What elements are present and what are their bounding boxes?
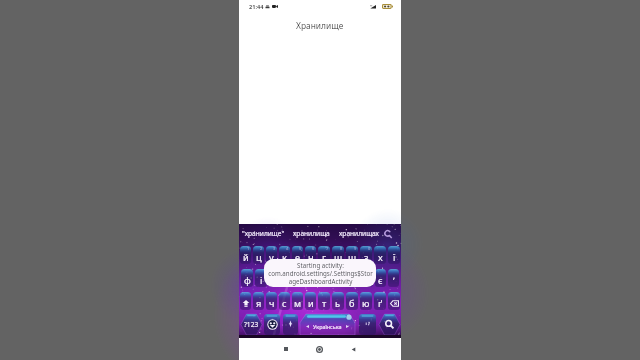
staticText: хранилища <box>293 229 330 238</box>
button[interactable]: Period <box>359 314 376 335</box>
button[interactable]: 8 <box>332 246 344 264</box>
button[interactable]: ч <box>266 292 277 310</box>
staticText: є <box>378 274 383 287</box>
staticText: ї <box>393 251 396 264</box>
button[interactable]: ж <box>362 269 373 287</box>
button[interactable]: я <box>253 292 264 310</box>
button[interactable]: Comma <box>283 314 298 335</box>
button[interactable]: Symbols <box>241 314 262 335</box>
staticText: 2 <box>260 246 263 251</box>
staticText: 7 <box>326 246 329 251</box>
button[interactable]: хранилищах <box>335 224 383 243</box>
staticText: Starting activity: com.android.settings/… <box>268 261 373 285</box>
button[interactable]: Shift <box>240 292 251 310</box>
staticText: 1 <box>247 246 250 251</box>
staticText: хранилищах <box>339 229 379 238</box>
staticText: к <box>282 251 287 264</box>
button[interactable]: 1 <box>240 246 251 264</box>
staticText: а <box>286 274 292 287</box>
button[interactable]: 2 <box>253 246 264 264</box>
button[interactable]: ґ <box>374 292 386 310</box>
staticText: е <box>295 251 301 264</box>
staticText: ф <box>244 274 251 287</box>
staticText: й <box>243 251 249 264</box>
button[interactable]: Voice search <box>382 228 394 240</box>
staticText: щ <box>348 251 357 264</box>
staticText: ш <box>334 251 343 264</box>
staticText: 6 <box>312 246 315 251</box>
staticText: Українська <box>313 323 342 330</box>
button[interactable]: ь <box>332 292 344 310</box>
button[interactable]: "хранилище" <box>240 224 287 243</box>
staticText: ?123 <box>244 320 259 329</box>
staticText: 8 <box>340 246 343 251</box>
button[interactable]: ʼ <box>388 269 399 287</box>
button[interactable]: 4 <box>279 246 290 264</box>
staticText: и <box>308 297 314 310</box>
staticText: ц <box>256 251 262 264</box>
button[interactable]: в <box>269 269 281 287</box>
staticText: і <box>260 274 263 287</box>
button[interactable]: і <box>255 269 267 287</box>
button[interactable]: х <box>374 246 386 264</box>
button[interactable]: ф <box>241 269 253 287</box>
staticText: с <box>282 297 287 310</box>
staticText: о <box>326 274 332 287</box>
button[interactable]: Recent apps <box>277 340 295 358</box>
staticText: Хранилище <box>296 20 344 31</box>
staticText: 4 <box>286 246 289 251</box>
button[interactable]: ю <box>360 292 372 310</box>
button[interactable]: 7 <box>318 246 330 264</box>
staticText: в <box>272 274 278 287</box>
staticText: т <box>322 297 327 310</box>
staticText: м <box>294 297 302 310</box>
staticText: х <box>378 251 383 264</box>
staticText: п <box>300 274 306 287</box>
staticText: 9 <box>354 246 357 251</box>
button[interactable]: п <box>297 269 308 287</box>
staticText: б <box>349 297 355 310</box>
button[interactable]: а <box>283 269 295 287</box>
button[interactable]: Home <box>310 340 328 358</box>
staticText: я <box>256 297 262 310</box>
staticText: р <box>313 274 319 287</box>
button[interactable]: є <box>375 269 386 287</box>
staticText: 21:44 <box>249 3 264 11</box>
staticText: д <box>352 274 358 287</box>
button[interactable]: Backspace <box>388 292 400 310</box>
button[interactable]: м <box>292 292 303 310</box>
button[interactable]: 9 <box>346 246 358 264</box>
button[interactable]: хранилища <box>287 224 335 243</box>
button[interactable]: и <box>305 292 316 310</box>
staticText: з <box>364 251 369 264</box>
staticText: г <box>322 251 327 264</box>
staticText: ь <box>335 297 341 310</box>
button[interactable]: Search <box>379 314 400 335</box>
button[interactable]: 5 <box>292 246 303 264</box>
staticText: ч <box>269 297 275 310</box>
staticText: ґ <box>378 297 383 310</box>
staticText: ю <box>362 297 370 310</box>
button[interactable]: Back <box>344 340 362 358</box>
staticText: ж <box>364 274 371 287</box>
button[interactable]: Українська <box>300 314 355 335</box>
button[interactable]: о <box>323 269 334 287</box>
staticText: л <box>339 274 345 287</box>
staticText: 3 <box>273 246 276 251</box>
button[interactable]: р <box>310 269 321 287</box>
staticText: н <box>308 251 314 264</box>
button[interactable]: 3 <box>266 246 277 264</box>
button[interactable]: 6 <box>305 246 316 264</box>
button[interactable]: с <box>279 292 290 310</box>
button[interactable]: б <box>346 292 358 310</box>
staticText: у <box>269 251 274 264</box>
button[interactable]: д <box>349 269 360 287</box>
button[interactable]: 0 <box>360 246 372 264</box>
staticText: 5 <box>299 246 302 251</box>
staticText: ʼ <box>393 274 395 287</box>
staticText: 0 <box>368 246 371 251</box>
button[interactable]: т <box>318 292 330 310</box>
button[interactable]: ї <box>388 246 400 264</box>
button[interactable]: л <box>336 269 347 287</box>
button[interactable]: Emoji <box>264 314 280 335</box>
